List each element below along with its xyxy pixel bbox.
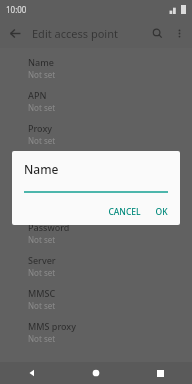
staticText: Not set [28,135,56,146]
staticText: Port [28,155,47,167]
button[interactable]: Search [146,22,168,44]
staticText: MMSC [28,287,56,299]
staticText: CANCEL [108,206,141,218]
staticText: Name [24,161,59,177]
staticText: Not set [28,102,56,113]
staticText: Not set [28,333,56,344]
button[interactable]: Server [0,250,192,283]
staticText: OK [155,206,168,218]
staticText: Not set [28,267,56,278]
staticText: Not set [28,234,56,245]
staticText: Proxy [28,122,53,134]
button[interactable]: Name [0,52,192,85]
staticText: MMS proxy [28,320,76,332]
button[interactable]: Proxy [0,118,192,151]
button[interactable]: MMSC [0,283,192,316]
staticText: Not set [28,168,56,179]
button[interactable]: MMS proxy [0,316,192,349]
staticText: Name [28,56,54,68]
button[interactable]: Navigate up [4,22,26,44]
button[interactable]: CANCEL [104,203,145,221]
staticText: Server [28,254,56,266]
staticText: Edit access point [32,26,118,41]
staticText: Not set [28,300,56,311]
button[interactable]: More options [168,22,190,44]
button[interactable]: Port [0,151,192,184]
button[interactable]: OK [151,203,172,221]
button[interactable]: Recent apps [150,363,170,383]
staticText: APN [28,89,47,101]
staticText: Username [28,188,73,200]
button[interactable]: Password [0,217,192,250]
staticText: Not set [28,69,56,80]
staticText: Password [28,221,70,233]
button[interactable]: Home [86,363,106,383]
button[interactable]: Back [22,363,42,383]
button[interactable]: Username [0,184,192,217]
button[interactable]: APN [0,85,192,118]
staticText: 10:00 [6,4,27,15]
